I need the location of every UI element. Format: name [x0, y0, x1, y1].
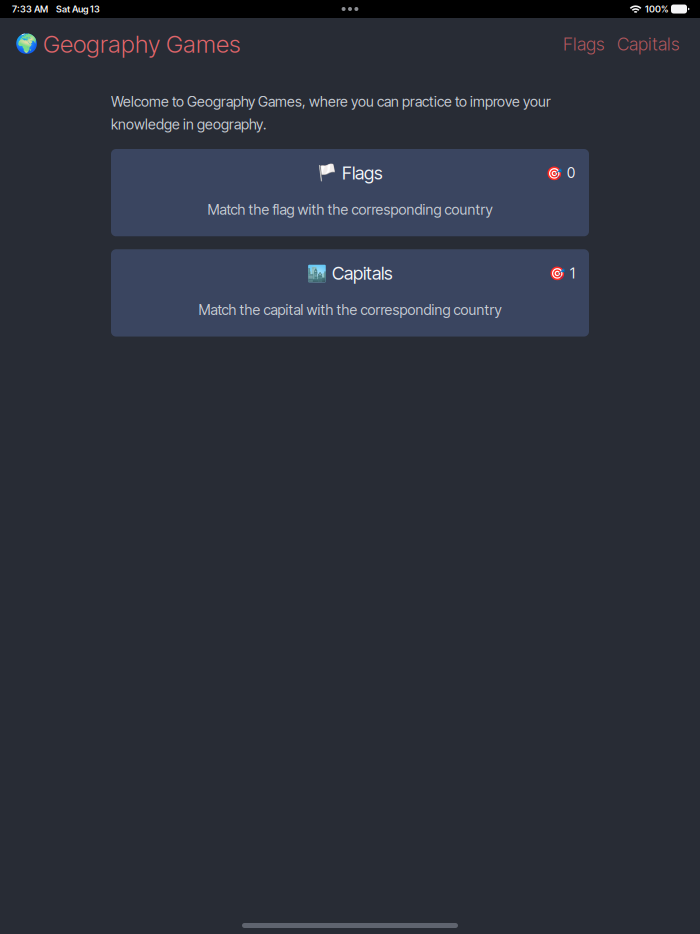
button[interactable]: Capitals — [617, 33, 680, 55]
staticText: Flags — [563, 33, 605, 55]
button[interactable]: 🏳 — [111, 149, 589, 236]
staticText: 🎯 — [549, 265, 566, 281]
staticText: Match the flag with the corresponding co… — [207, 201, 492, 218]
staticText: Sat Aug 13 — [56, 3, 100, 15]
staticText: 100% — [645, 3, 669, 15]
staticText: 🎯 — [546, 165, 563, 181]
staticText: Welcome to Geography Games, where you ca… — [111, 93, 551, 133]
staticText: Capitals — [332, 262, 393, 284]
staticText: 1 — [570, 265, 575, 282]
staticText: 🏳 — [317, 164, 337, 182]
staticText: 7:33 AM — [12, 3, 48, 15]
button[interactable]: Multitasking controls — [333, 0, 367, 18]
button[interactable]: 🏙 — [111, 249, 589, 337]
staticText: Match the capital with the corresponding… — [198, 301, 501, 319]
staticText: 🏙 — [307, 264, 327, 283]
staticText: 0 — [567, 165, 575, 181]
staticText: Capitals — [617, 33, 680, 55]
staticText: Geography Games — [43, 29, 241, 58]
button[interactable]: Flags — [563, 33, 605, 55]
staticText: 🌍 — [15, 33, 38, 55]
staticText: Flags — [342, 162, 383, 184]
